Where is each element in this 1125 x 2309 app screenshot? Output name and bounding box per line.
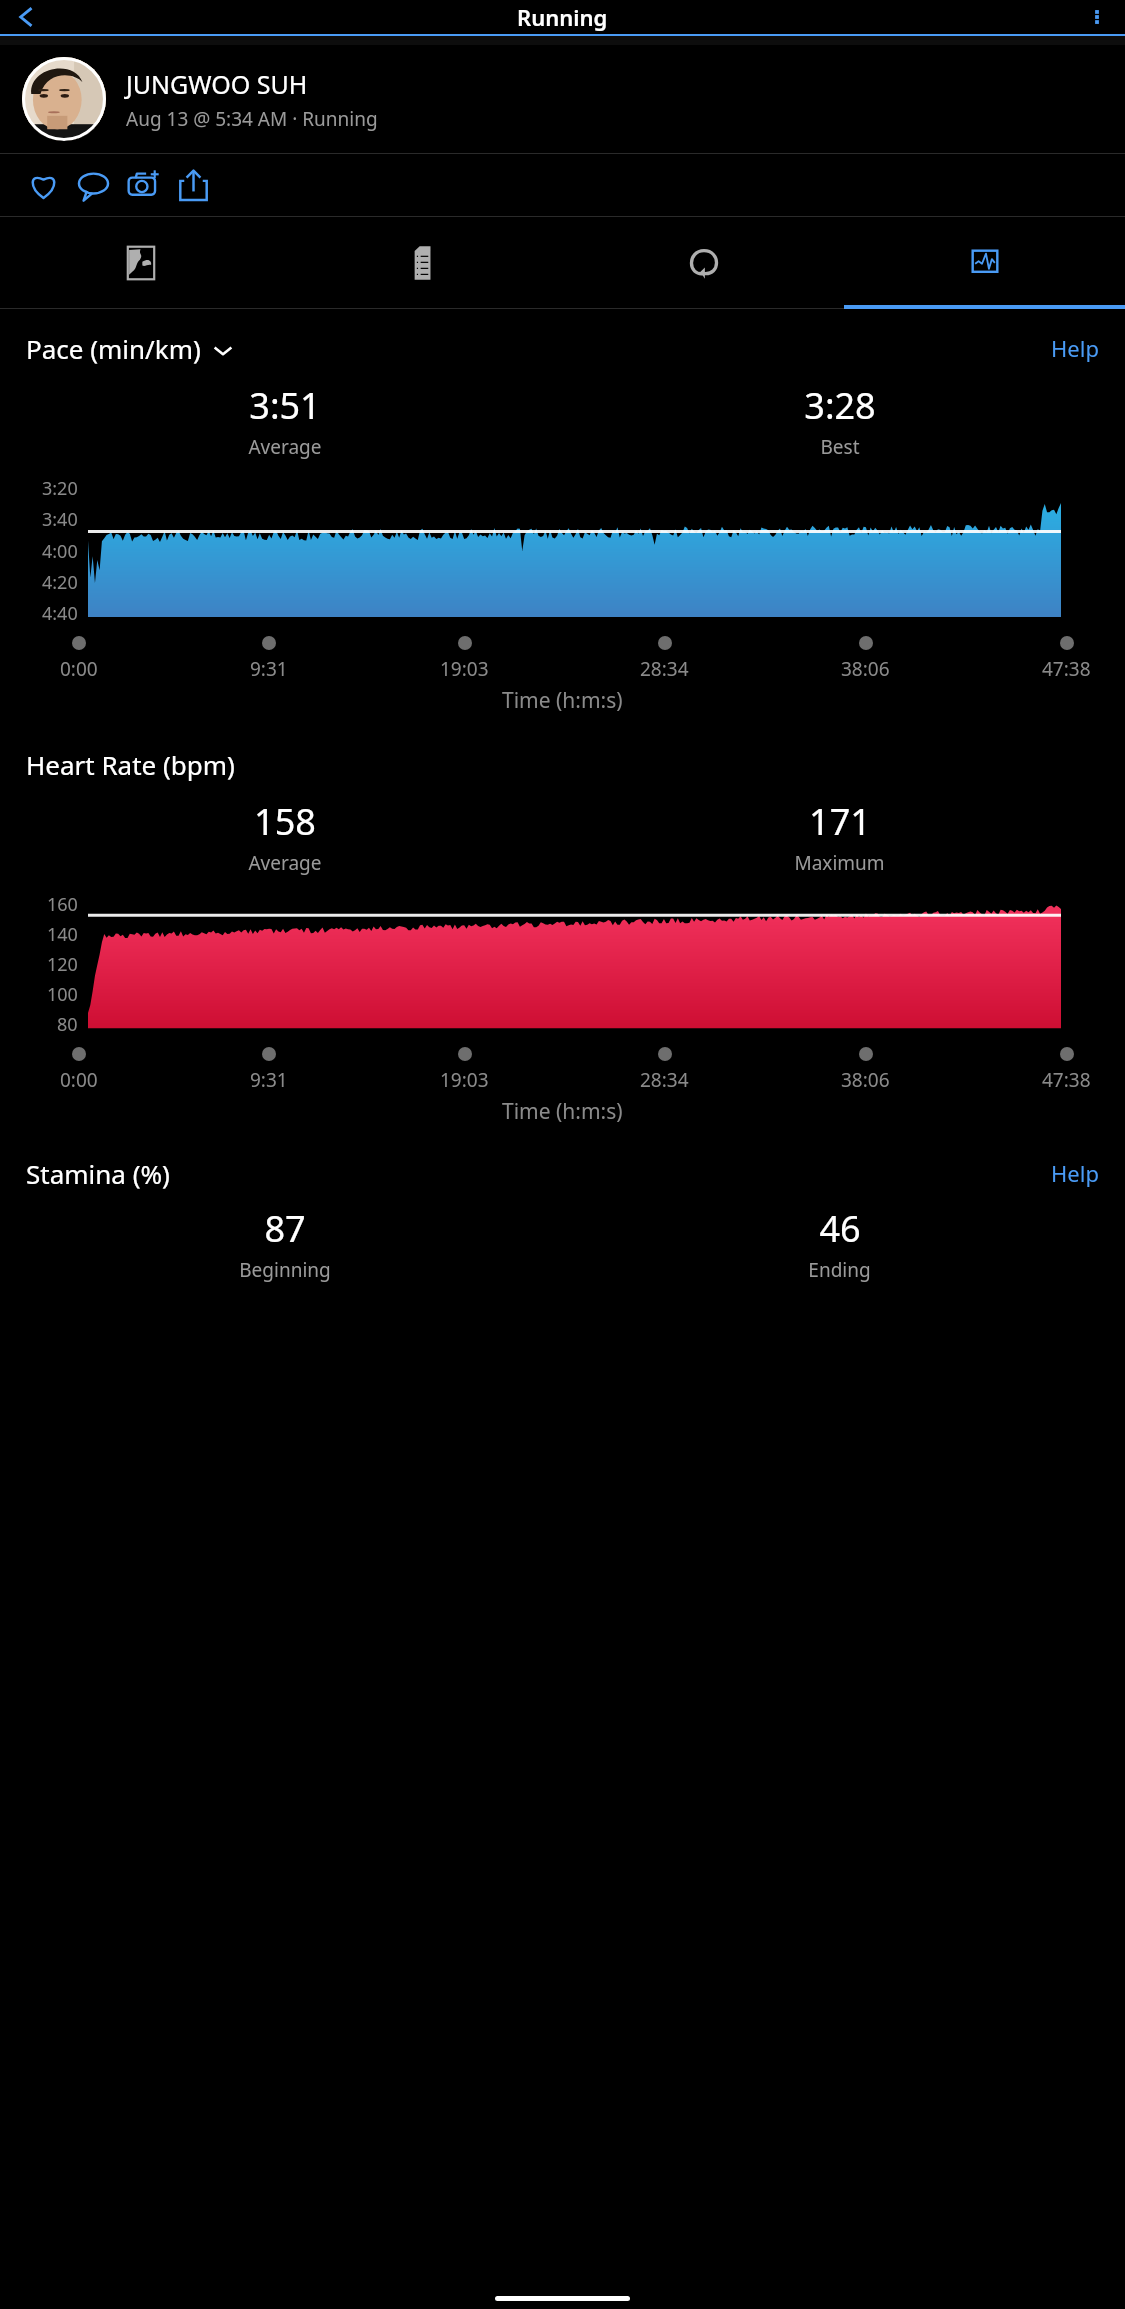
button[interactable]: Like [18,160,68,210]
button[interactable]: Stamina (%) [26,1156,170,1191]
staticText: Time (h:m:s) [502,686,623,715]
staticText: 4:40 [42,601,78,626]
staticText: 120 [47,952,78,977]
staticText: 28:34 [640,1067,689,1093]
staticText: 4:20 [42,570,78,595]
button[interactable]: Back [4,0,48,34]
staticText: 47:38 [1042,656,1091,682]
staticText: 160 [47,892,78,917]
staticText: Stamina (%) [26,1156,170,1191]
button[interactable]: More options [1075,0,1119,34]
staticText: 9:31 [250,656,288,682]
button[interactable]: Help [1051,333,1099,363]
staticText: Maximum [794,850,885,876]
staticText: 3:51 [249,381,321,430]
button[interactable]: Charts [844,217,1125,309]
staticText: Average [248,434,322,460]
staticText: Heart Rate (bpm) [26,747,235,782]
staticText: 158 [254,797,316,846]
staticText: Aug 13 @ 5:34 AM · Running [126,106,378,132]
staticText: Best [820,434,860,460]
staticText: 19:03 [440,1067,489,1093]
staticText: Beginning [239,1257,331,1283]
staticText: 38:06 [841,656,890,682]
staticText: 38:06 [841,1067,890,1093]
staticText: Pace (min/km) [26,331,201,366]
staticText: 46 [819,1204,861,1253]
staticText: Running [517,2,608,32]
staticText: 9:31 [250,1067,288,1093]
staticText: 100 [47,982,78,1007]
staticText: 0:00 [60,1067,98,1093]
staticText: Ending [808,1257,871,1283]
staticText: 47:38 [1042,1067,1091,1093]
staticText: 80 [57,1012,78,1037]
staticText: JUNGWOO SUH [126,67,308,101]
button[interactable]: Share [168,160,218,210]
staticText: Help [1051,333,1099,363]
staticText: 3:20 [42,476,78,501]
staticText: 171 [809,797,871,846]
staticText: 3:40 [42,507,78,532]
staticText: 0:00 [60,656,98,682]
button[interactable]: Details [282,217,563,309]
button[interactable]: Pace (min/km) [26,331,233,366]
button[interactable]: Help [1051,1158,1099,1188]
staticText: 19:03 [440,656,489,682]
button[interactable]: Add photo [118,160,168,210]
button[interactable]: Heart Rate (bpm) [26,747,235,782]
staticText: 4:00 [42,539,78,564]
staticText: 28:34 [640,656,689,682]
button[interactable]: Laps [563,217,844,309]
staticText: 87 [264,1204,306,1253]
staticText: Help [1051,1158,1099,1188]
button[interactable]: JUNGWOO SUH [0,45,1125,153]
button[interactable]: Map [0,217,282,309]
staticText: Time (h:m:s) [502,1097,623,1126]
staticText: Average [248,850,322,876]
staticText: 140 [47,922,78,947]
button[interactable]: Comment [68,160,118,210]
staticText: 3:28 [804,381,876,430]
